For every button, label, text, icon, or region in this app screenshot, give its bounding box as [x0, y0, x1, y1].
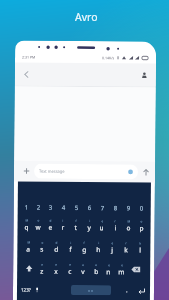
button[interactable]: r	[119, 236, 133, 258]
button[interactable]: e	[35, 258, 49, 280]
staticText: p	[139, 223, 144, 232]
button[interactable]	[23, 70, 31, 79]
staticText: 2	[37, 204, 41, 212]
button[interactable]: i	[82, 214, 96, 236]
staticText: e	[102, 219, 104, 223]
staticText: i	[98, 241, 99, 245]
staticText: 0	[140, 204, 144, 212]
button[interactable]: 9	[122, 202, 135, 214]
staticText: e	[55, 263, 57, 267]
staticText: t	[74, 223, 78, 232]
button[interactable]: e	[89, 258, 102, 280]
staticText: y	[87, 223, 92, 232]
staticText: d	[55, 241, 57, 245]
button[interactable]: 6	[83, 202, 96, 214]
staticText: 8	[114, 204, 118, 212]
button[interactable]: k	[133, 236, 147, 258]
button[interactable]: f	[77, 236, 91, 258]
staticText: q	[24, 222, 29, 231]
staticText: z	[40, 267, 44, 276]
button[interactable]: o	[32, 213, 45, 236]
button[interactable]: d	[44, 214, 57, 236]
staticText: 5	[75, 204, 79, 212]
button[interactable]: 4	[57, 202, 70, 214]
button[interactable]	[23, 167, 30, 175]
staticText: n	[106, 267, 111, 276]
button[interactable]: e	[102, 258, 115, 280]
staticText: l	[139, 245, 141, 254]
staticText: h	[96, 245, 101, 254]
staticText: c	[68, 267, 72, 276]
button[interactable]: 5	[70, 202, 83, 214]
staticText: 6	[88, 204, 92, 212]
staticText: 1	[25, 203, 29, 211]
staticText: o	[41, 241, 43, 245]
staticText: d	[50, 219, 52, 223]
button[interactable]: .	[126, 286, 128, 294]
staticText: 9	[127, 204, 131, 212]
button[interactable]: 7	[96, 202, 109, 214]
button[interactable]: i	[63, 236, 77, 258]
staticText: j	[111, 245, 113, 254]
button[interactable]: M	[20, 213, 33, 235]
staticText: e	[69, 263, 71, 267]
button[interactable]: « »	[71, 285, 111, 295]
staticText: f	[69, 245, 72, 254]
button[interactable]	[34, 287, 40, 293]
staticText: 3	[49, 204, 53, 212]
button[interactable]: r	[108, 214, 122, 236]
button[interactable]: M	[121, 214, 135, 236]
button[interactable]	[142, 168, 150, 177]
staticText: u	[99, 223, 105, 232]
staticText: Text message	[39, 169, 65, 174]
staticText: v	[81, 267, 85, 276]
button[interactable]: i	[56, 214, 70, 236]
button[interactable]: e	[95, 214, 109, 236]
staticText: e	[108, 263, 110, 267]
button[interactable]: o	[134, 214, 148, 236]
staticText: 4	[62, 204, 66, 212]
button[interactable]: d	[49, 236, 63, 258]
button[interactable]: 2	[33, 201, 45, 214]
staticText: d	[54, 245, 58, 254]
button[interactable]: M	[20, 235, 35, 257]
button[interactable]: e	[115, 258, 128, 280]
staticText: r	[125, 241, 127, 245]
staticText: i	[70, 241, 71, 245]
button[interactable]: e	[49, 258, 63, 280]
button[interactable]: e	[105, 236, 119, 258]
button[interactable]: o	[35, 236, 49, 258]
button[interactable]: 0	[135, 202, 148, 214]
button[interactable]: e	[63, 258, 76, 280]
button[interactable]: 3	[45, 202, 57, 214]
button[interactable]: Text message	[39, 164, 133, 179]
staticText: M	[26, 218, 29, 222]
staticText: o	[141, 219, 143, 223]
button[interactable]: e	[76, 258, 89, 280]
staticText: k	[124, 245, 128, 254]
staticText: 2:31 PM	[22, 54, 36, 60]
staticText: m	[118, 267, 125, 276]
button[interactable]: i	[91, 236, 105, 258]
button[interactable]: 1	[21, 201, 33, 213]
staticText: M	[27, 240, 30, 244]
staticText: i	[114, 223, 117, 232]
button[interactable]	[141, 71, 148, 79]
button[interactable]: f	[69, 214, 83, 236]
button[interactable]	[137, 286, 146, 296]
button[interactable]	[128, 263, 144, 275]
staticText: f	[76, 219, 78, 223]
staticText: 7	[101, 204, 105, 212]
staticText: 0.14K/s	[102, 55, 115, 60]
button[interactable]: 123?	[21, 286, 31, 293]
staticText: a	[26, 244, 30, 253]
staticText: b	[94, 267, 98, 276]
staticText: o	[126, 223, 131, 232]
staticText: x	[54, 267, 58, 276]
button[interactable]	[23, 262, 35, 275]
button[interactable]: 8	[109, 202, 122, 214]
staticText: e	[111, 241, 113, 245]
staticText: o	[38, 219, 40, 223]
button[interactable]: Avro	[75, 10, 98, 24]
